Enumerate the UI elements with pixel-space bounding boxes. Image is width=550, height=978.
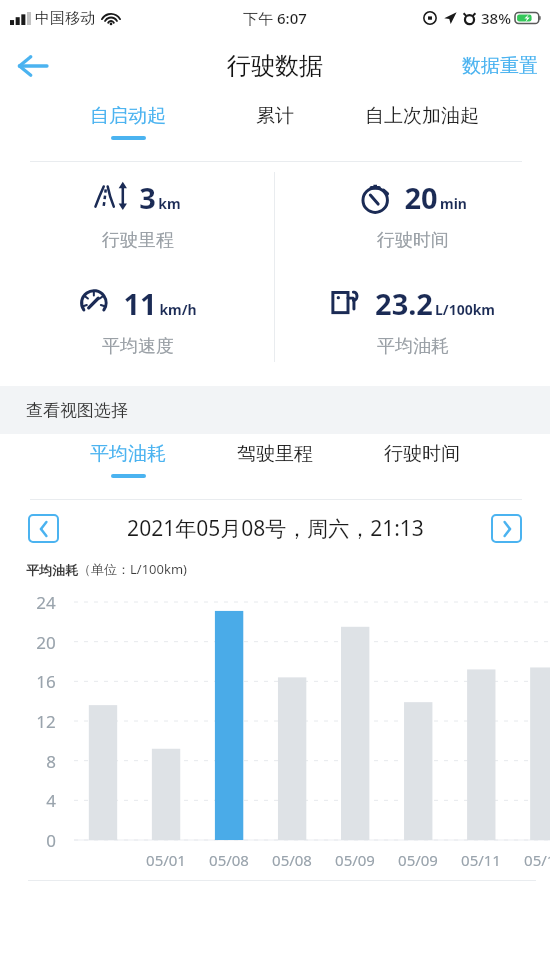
button[interactable]: 驾驶里程 [203,442,347,490]
staticText: 累计 [256,104,294,128]
staticText: 20 [404,178,438,217]
staticText: （单位：L/100km) [78,560,187,578]
staticText: km [158,194,181,213]
button[interactable]: 返回 [6,40,58,92]
button[interactable]: 上一天 [28,514,59,543]
staticText: 平均油耗 [377,335,449,358]
button[interactable]: 自上次加油起 [350,104,494,152]
staticText: 05/08 [209,850,249,870]
staticText: 05/08 [272,850,312,870]
staticText: 05/09 [398,850,438,870]
staticText: 查看视图选择 [26,400,128,421]
staticText: 3 [139,178,156,217]
staticText: 行驶里程 [102,229,174,252]
staticText: 0 [46,829,56,852]
staticText: 05/11 [524,850,550,870]
staticText: 38% [481,8,511,28]
staticText: 数据重置 [462,54,538,78]
staticText: 行驶数据 [227,51,323,81]
staticText: 自上次加油起 [365,104,479,128]
staticText: 下午 6:07 [243,8,307,28]
staticText: 23.2 [375,284,433,323]
button[interactable]: 行驶时间 [350,442,494,490]
staticText: 驾驶里程 [237,442,313,466]
staticText: 中国移动 [35,9,95,28]
staticText: 自启动起 [90,104,166,128]
staticText: 行驶时间 [384,442,460,466]
staticText: 05/11 [461,850,501,870]
staticText: L/100km [435,300,495,319]
staticText: 05/01 [146,850,186,870]
staticText: 行驶时间 [377,229,449,252]
staticText: 平均油耗 [90,442,166,466]
staticText: 4 [46,789,56,812]
staticText: 平均油耗 [26,562,78,578]
staticText: 20 [36,631,56,654]
staticText: 平均速度 [102,335,174,358]
staticText: 12 [36,710,56,733]
staticText: km/h [159,300,197,319]
staticText: 8 [46,750,56,773]
button[interactable]: 数据重置 [458,46,542,86]
button[interactable]: 下一天 [491,514,522,543]
staticText: 24 [36,591,56,614]
staticText: 16 [36,670,56,693]
staticText: min [440,194,467,213]
button[interactable]: 平均油耗 [56,442,200,490]
staticText: 2021年05月08号，周六，21:13 [127,514,424,543]
button[interactable]: 自启动起 [56,104,200,152]
button[interactable]: 累计 [203,104,347,152]
staticText: 05/09 [335,850,375,870]
staticText: 11 [123,284,157,323]
